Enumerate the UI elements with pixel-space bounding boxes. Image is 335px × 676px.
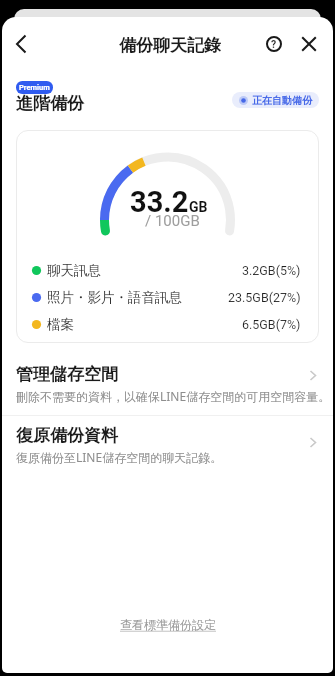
button[interactable]: 查看標準備份設定 [112, 617, 224, 632]
staticText: 復原備份至LINE儲存空間的聊天記錄。 [16, 449, 223, 465]
button[interactable] [297, 32, 321, 56]
button[interactable]: 復原備份資料 [2, 425, 333, 465]
staticText: 6.5GB(7%) [242, 317, 301, 332]
staticText: 23.5GB(27%) [228, 290, 301, 305]
staticText: 刪除不需要的資料，以確保LINE儲存空間的可用空間容量。 [16, 388, 331, 404]
staticText: 33.2 [130, 185, 189, 219]
button[interactable] [11, 32, 35, 56]
staticText: ? [271, 38, 277, 50]
button[interactable]: ? [262, 32, 286, 56]
staticText: 查看標準備份設定 [120, 617, 216, 632]
staticText: Premium [19, 83, 50, 92]
staticText: 備份聊天記錄 [119, 35, 221, 56]
staticText: 復原備份資料 [16, 425, 118, 446]
staticText: 正在自動備份 [252, 94, 312, 107]
staticText: GB [189, 199, 208, 215]
staticText: / 100GB [145, 212, 200, 230]
staticText: 進階備份 [16, 93, 84, 114]
staticText: 管理儲存空間 [16, 364, 118, 385]
staticText: 檔案 [47, 316, 74, 333]
staticText: 聊天訊息 [47, 262, 101, 279]
staticText: 3.2GB(5%) [242, 263, 301, 278]
staticText: 照片・影片・語音訊息 [47, 289, 182, 306]
button[interactable]: 正在自動備份 [232, 92, 319, 108]
button[interactable]: 管理儲存空間 [2, 364, 333, 404]
